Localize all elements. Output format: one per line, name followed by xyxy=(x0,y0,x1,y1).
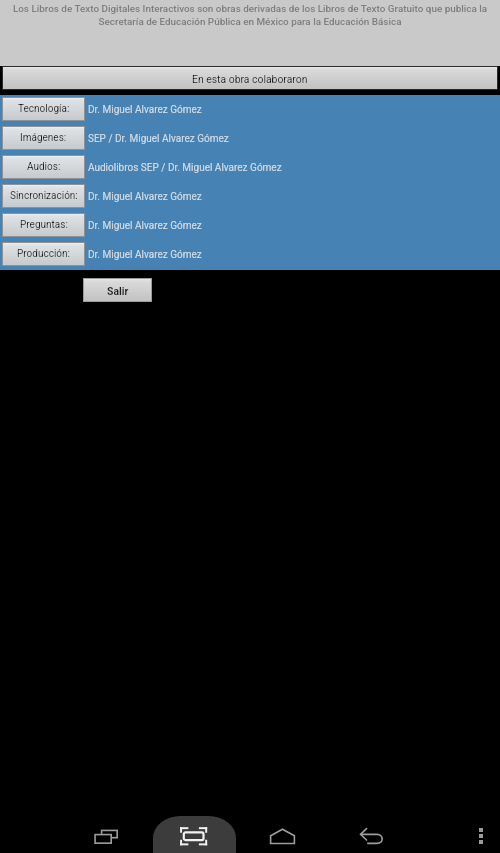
button[interactable]: Producción: xyxy=(3,243,84,265)
button[interactable]: More options xyxy=(471,827,493,849)
button[interactable]: Audios: xyxy=(3,156,84,178)
button[interactable]: Recent apps xyxy=(93,826,133,853)
staticText: Producción: xyxy=(17,248,71,260)
button[interactable]: Home xyxy=(269,826,309,853)
button[interactable]: Tecnología: xyxy=(3,98,84,120)
staticText: Los Libros de Texto Digitales Interactiv… xyxy=(3,3,497,28)
button[interactable]: Fullscreen xyxy=(180,826,220,853)
button[interactable]: Imágenes: xyxy=(3,127,84,149)
button[interactable]: Sincronización: xyxy=(3,185,84,207)
button[interactable]: Preguntas: xyxy=(3,214,84,236)
staticText: Dr. Miguel Alvarez Gómez xyxy=(88,249,202,261)
staticText: Salir xyxy=(107,285,129,297)
button[interactable]: Back xyxy=(359,826,399,853)
staticText: Audios: xyxy=(27,161,61,173)
staticText: Dr. Miguel Alvarez Gómez xyxy=(88,191,202,203)
staticText: Imágenes: xyxy=(20,132,67,144)
staticText: Audiolibros SEP / Dr. Miguel Alvarez Góm… xyxy=(88,162,282,174)
staticText: Sincronización: xyxy=(10,190,78,202)
staticText: Preguntas: xyxy=(20,219,68,231)
button[interactable]: En esta obra colaboraron xyxy=(3,67,497,89)
button[interactable]: Salir xyxy=(84,279,151,301)
staticText: SEP / Dr. Miguel Alvarez Gómez xyxy=(88,133,229,145)
staticText: Tecnología: xyxy=(18,103,70,115)
staticText: Dr. Miguel Alvarez Gómez xyxy=(88,104,202,116)
staticText: Dr. Miguel Alvarez Gómez xyxy=(88,220,202,232)
staticText: En esta obra colaboraron xyxy=(192,73,308,85)
